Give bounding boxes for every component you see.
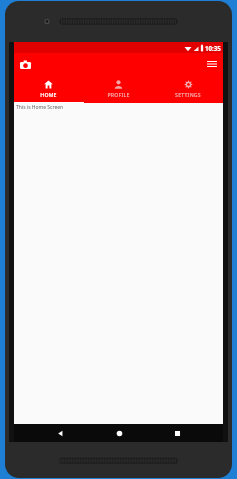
staticText: PROFILE bbox=[107, 91, 130, 98]
button[interactable]: PROFILE bbox=[83, 75, 153, 102]
button[interactable]: Menu bbox=[204, 56, 220, 72]
button[interactable]: Camera bbox=[17, 56, 33, 72]
button[interactable]: HOME bbox=[14, 75, 83, 102]
button[interactable]: Back bbox=[47, 424, 73, 442]
staticText: HOME bbox=[40, 91, 57, 98]
staticText: This is Home Screen bbox=[16, 104, 64, 111]
staticText: 10:35 bbox=[205, 44, 221, 52]
button[interactable]: Home bbox=[106, 424, 132, 442]
button[interactable]: Recent apps bbox=[164, 424, 190, 442]
button[interactable]: SETTINGS bbox=[153, 75, 223, 102]
staticText: SETTINGS bbox=[175, 91, 201, 98]
